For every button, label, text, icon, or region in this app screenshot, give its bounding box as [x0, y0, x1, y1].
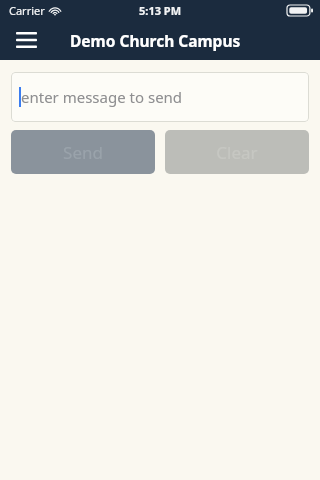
staticText: Demo Church Campus — [70, 30, 241, 51]
staticText: enter message to send — [21, 87, 183, 107]
button[interactable]: enter message to send — [11, 72, 309, 122]
staticText: 5:13 PM — [139, 3, 182, 18]
button[interactable]: Open navigation menu — [8, 22, 44, 58]
button[interactable]: Send — [11, 130, 155, 174]
button[interactable]: Clear — [165, 130, 309, 174]
staticText: Clear — [216, 141, 258, 164]
staticText: Send — [63, 141, 103, 164]
staticText: Carrier — [9, 3, 45, 18]
